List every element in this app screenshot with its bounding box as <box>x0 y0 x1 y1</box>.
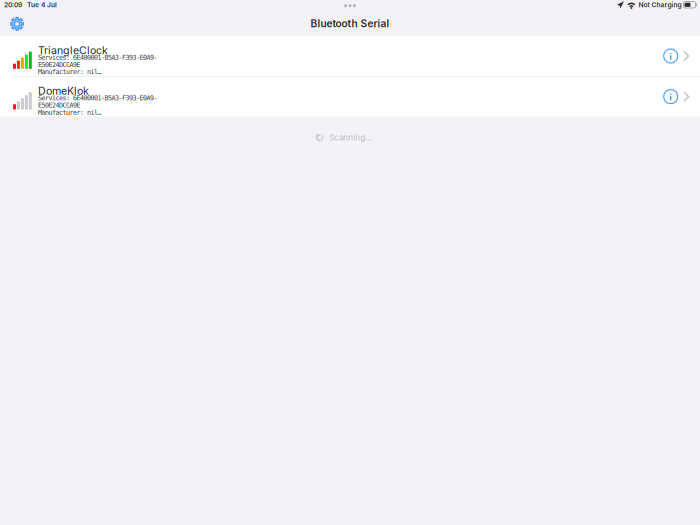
staticText: E50E24DCCA9E <box>38 101 80 109</box>
staticText: 20:09 <box>4 1 22 9</box>
staticText: Tue 4 Jul <box>27 1 57 9</box>
staticText: TriangleClock <box>38 44 108 57</box>
button[interactable]: TriangleClock <box>0 36 700 76</box>
staticText: Manufacturer: nil… <box>38 108 101 116</box>
button[interactable]: DomeKlok <box>0 77 700 117</box>
button[interactable]: Multitasking controls <box>335 1 365 10</box>
button[interactable]: Device info <box>659 81 683 113</box>
staticText: E50E24DCCA9E <box>38 61 80 68</box>
staticText: Services: 6E400001-B5A3-F393-E0A9- <box>38 94 157 102</box>
button[interactable]: Device info <box>659 40 683 72</box>
staticText: Services: 6E400001-B5A3-F393-E0A9- <box>38 53 157 61</box>
staticText: Scanning... <box>329 133 371 142</box>
button[interactable]: Settings <box>0 15 34 38</box>
staticText: DomeKlok <box>38 84 89 97</box>
staticText: Bluetooth Serial <box>310 17 389 30</box>
staticText: Not Charging <box>638 1 681 9</box>
staticText: Manufacturer: nil… <box>38 68 101 76</box>
